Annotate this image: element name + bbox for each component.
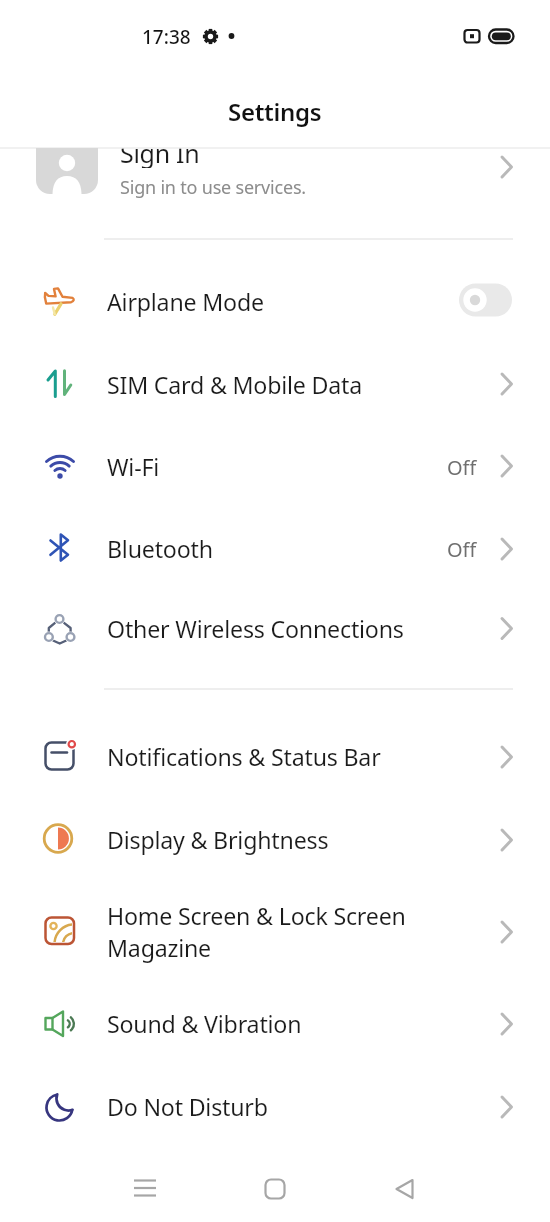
staticText: Other Wireless Connections xyxy=(107,613,404,645)
staticText: Settings xyxy=(228,95,322,127)
staticText: Magazine xyxy=(107,932,211,964)
staticText: Sign In xyxy=(120,136,200,168)
staticText: SIM Card & Mobile Data xyxy=(107,369,363,401)
staticText: Sound & Vibration xyxy=(107,1008,302,1040)
staticText: Bluetooth xyxy=(107,533,213,565)
staticText: Do Not Disturb xyxy=(107,1091,268,1123)
staticText: Airplane Mode xyxy=(107,286,264,318)
staticText: Display & Brightness xyxy=(107,824,329,856)
staticText: Sign in to use services. xyxy=(120,175,306,200)
staticText: Notifications & Status Bar xyxy=(107,741,381,773)
staticText: Off xyxy=(447,454,477,481)
staticText: 17:38 xyxy=(142,24,191,48)
staticText: Off xyxy=(447,536,477,563)
staticText: Home Screen & Lock Screen xyxy=(107,900,406,932)
staticText: Wi-Fi xyxy=(107,451,160,483)
